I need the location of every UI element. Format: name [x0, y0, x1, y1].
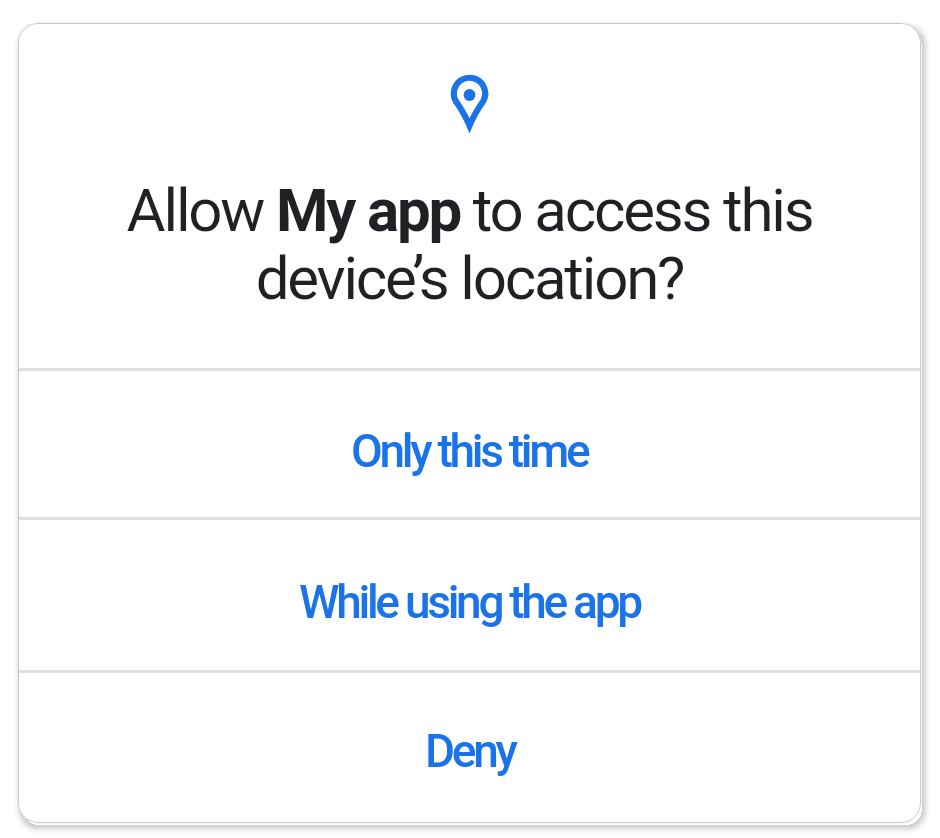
- staticText: Deny: [425, 724, 515, 778]
- staticText: While using the app: [299, 575, 640, 629]
- staticText: Only this time: [351, 424, 588, 478]
- button[interactable]: While using the app: [18, 520, 921, 670]
- button[interactable]: Only this time: [18, 371, 921, 517]
- staticText: Allow My app to access this device’s loc…: [18, 175, 921, 313]
- button[interactable]: Deny: [18, 673, 921, 823]
